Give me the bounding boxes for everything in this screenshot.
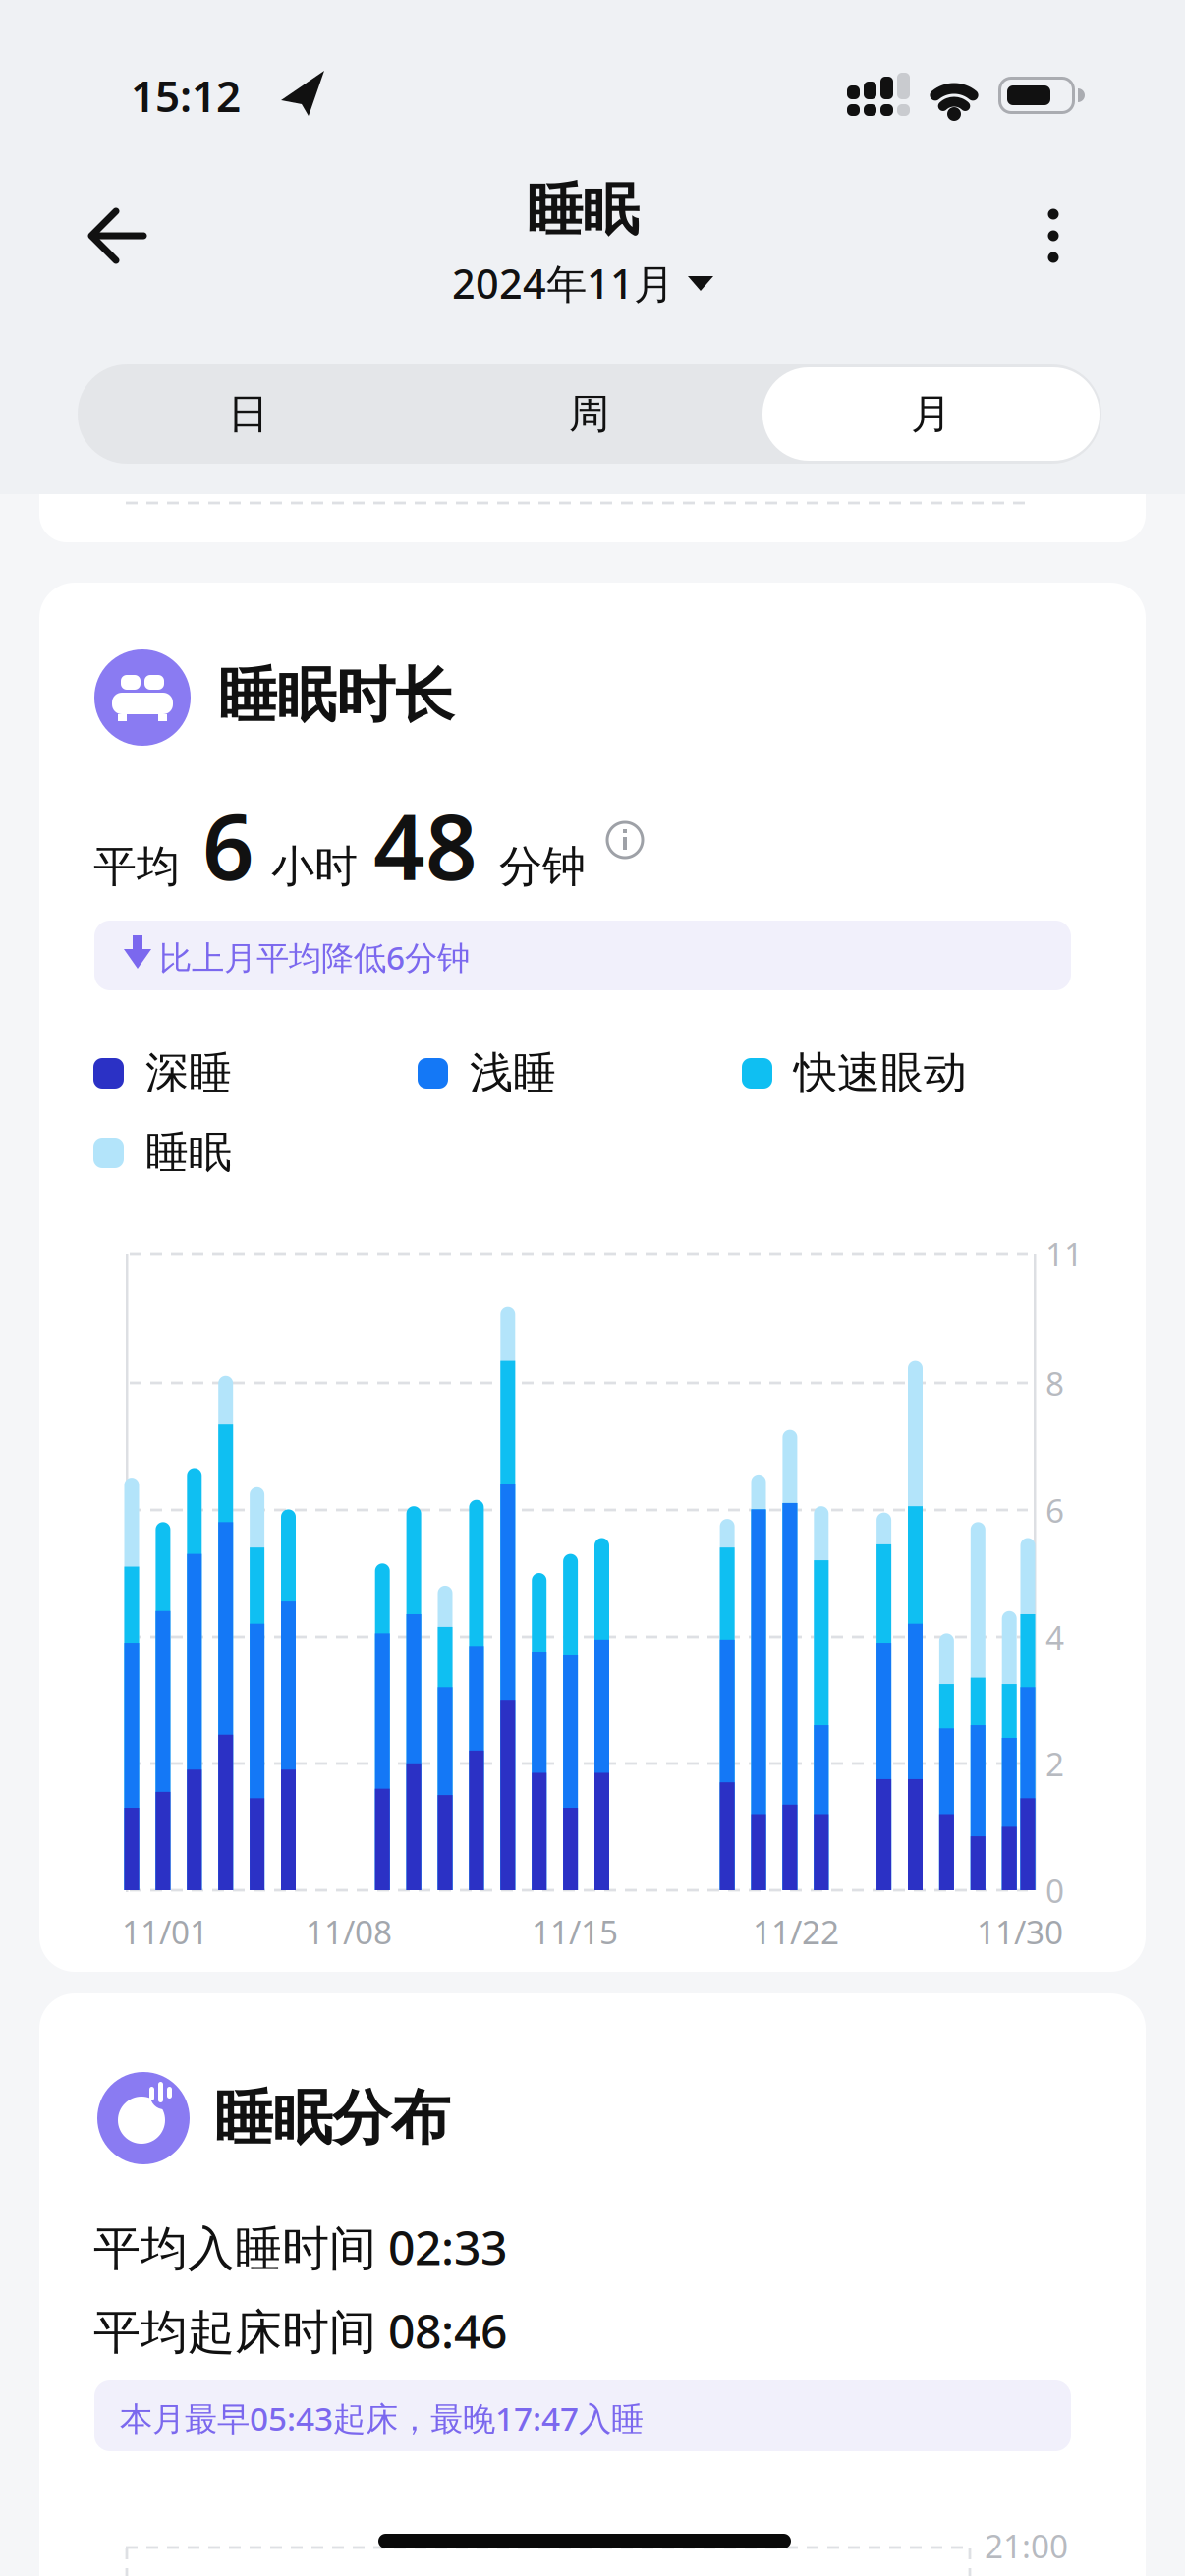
staticText: 睡眠时长 (218, 659, 454, 732)
staticText: 11/15 (532, 1910, 618, 1953)
button[interactable]: 月 (761, 364, 1101, 464)
staticText: 21:00 (985, 2524, 1068, 2567)
staticText: 4 (1045, 1615, 1064, 1659)
staticText: 11/30 (977, 1910, 1063, 1953)
staticText: 6 (1045, 1488, 1064, 1532)
staticText: 深睡 (145, 1046, 232, 1099)
staticText: 平均入睡时间 02:33 (93, 2216, 507, 2278)
staticText: 11 (1045, 1232, 1083, 1275)
staticText: 分钟 (499, 840, 586, 893)
staticText: 2024年11月 (452, 256, 674, 310)
staticText: 平均 (93, 840, 180, 893)
staticText: 睡眠分布 (214, 2082, 450, 2154)
staticText: 睡眠 (527, 176, 639, 245)
staticText: 8 (1045, 1362, 1064, 1405)
staticText: 周 (569, 389, 609, 439)
button[interactable] (1019, 192, 1088, 280)
staticText: 48 (373, 785, 478, 905)
staticText: 11/22 (753, 1910, 839, 1953)
staticText: 浅睡 (470, 1046, 556, 1099)
staticText: 11/01 (122, 1910, 208, 1953)
staticText: 月 (911, 389, 951, 439)
staticText: 6 (202, 785, 254, 905)
staticText: 本月最早05:43起床，最晚17:47入睡 (120, 2396, 644, 2440)
staticText: 0 (1045, 1869, 1064, 1912)
button[interactable]: 周 (419, 364, 760, 464)
staticText: 比上月平均降低6分钟 (159, 935, 470, 979)
button[interactable] (603, 818, 647, 862)
staticText: 小时 (271, 840, 358, 893)
staticText: 平均起床时间 08:46 (93, 2299, 507, 2362)
button[interactable] (79, 196, 157, 275)
staticText: 快速眼动 (794, 1046, 967, 1099)
staticText: 11/08 (306, 1910, 392, 1953)
staticText: 15:12 (131, 67, 241, 124)
button[interactable]: 日 (78, 364, 419, 464)
staticText: 日 (228, 389, 268, 439)
staticText: 2 (1045, 1742, 1064, 1785)
staticText: 睡眠 (145, 1126, 232, 1179)
